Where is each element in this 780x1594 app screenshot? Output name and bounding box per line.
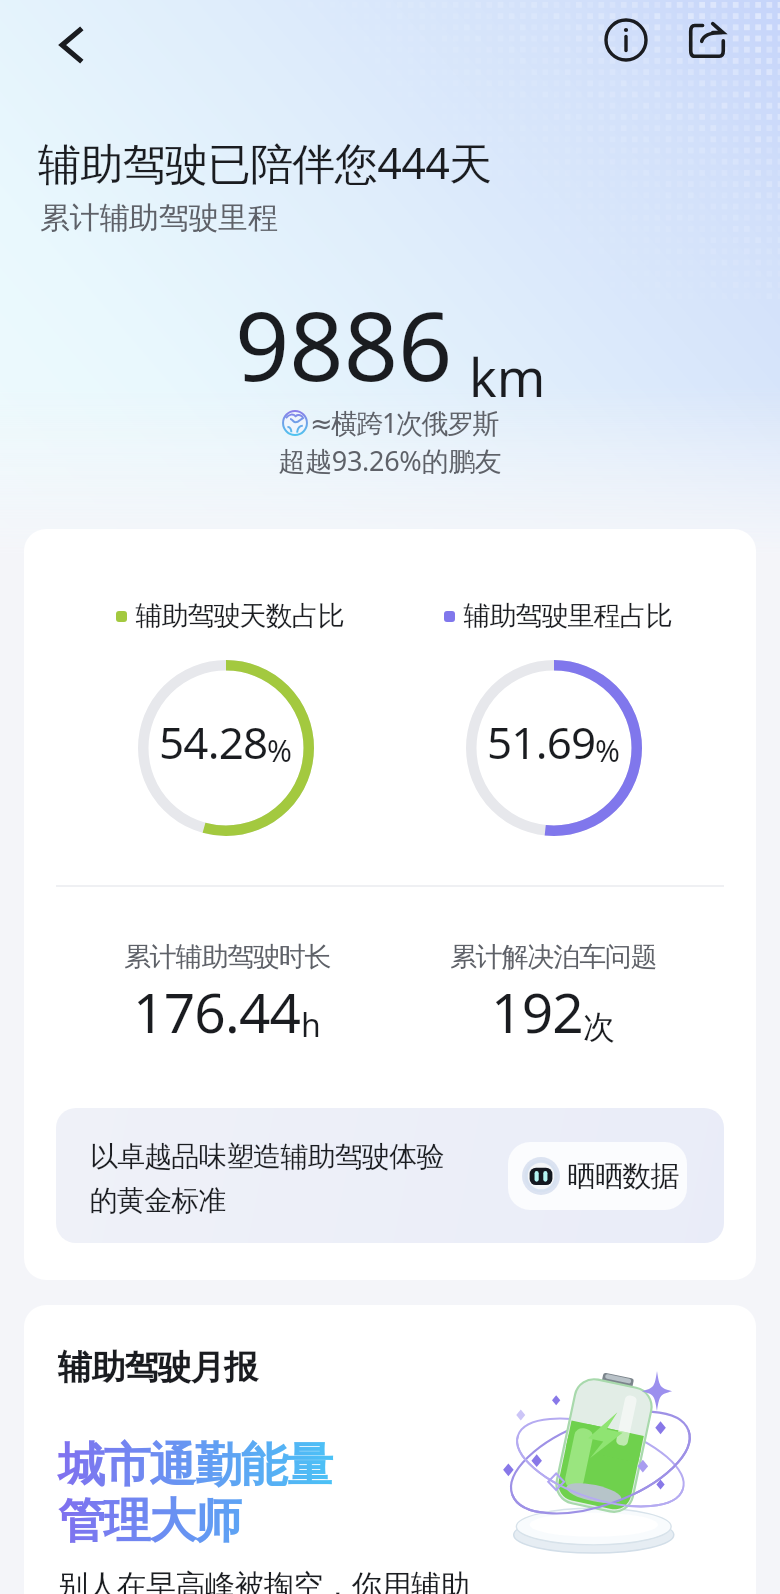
staticText: 9886 — [235, 279, 453, 408]
staticText: 辅助驾驶天数占比 — [136, 599, 344, 633]
staticText: h — [301, 1003, 321, 1047]
staticText: % — [595, 730, 620, 771]
staticText: 辅助驾驶已陪伴您444天 — [38, 133, 492, 192]
staticText: 的黄金标准 — [90, 1183, 226, 1218]
button[interactable]: Back — [46, 20, 96, 70]
staticText: 累计辅助驾驶里程 — [40, 199, 278, 237]
button[interactable]: 晒晒数据 — [508, 1142, 687, 1210]
staticText: 超越93.26%的鹏友 — [0, 442, 780, 479]
staticText: 别人在早高峰被掏空，你用辅助 — [58, 1567, 470, 1594]
staticText: 51.69 — [487, 712, 596, 772]
staticText: 管理大师 — [58, 1492, 241, 1551]
staticText: 176.44 — [133, 974, 301, 1049]
staticText: 累计解决泊车问题 — [450, 940, 657, 974]
staticText: 晒晒数据 — [567, 1158, 679, 1195]
staticText: 辅助驾驶月报 — [58, 1346, 258, 1389]
button[interactable]: Share — [681, 14, 733, 66]
staticText: 次 — [583, 1007, 615, 1047]
button[interactable]: Info — [600, 14, 652, 66]
staticText: ≈横跨1次俄罗斯 — [310, 404, 499, 441]
staticText: km — [469, 341, 546, 412]
staticText: 192 — [491, 974, 583, 1049]
staticText: 累计辅助驾驶时长 — [124, 940, 331, 974]
staticText: % — [267, 730, 292, 771]
staticText: 辅助驾驶里程占比 — [464, 599, 672, 633]
staticText: 54.28 — [159, 712, 268, 772]
staticText: 以卓越品味塑造辅助驾驶体验 — [90, 1139, 444, 1174]
staticText: 城市通勤能量 — [58, 1436, 332, 1495]
